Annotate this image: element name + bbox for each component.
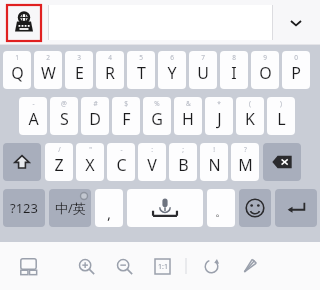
button[interactable]: Shift (3, 143, 41, 181)
staticText: % (154, 99, 160, 108)
staticText: X (85, 154, 95, 176)
button[interactable]: 7 (189, 51, 217, 89)
button[interactable]: ; (169, 143, 197, 181)
button[interactable]: 9 (251, 51, 279, 89)
staticText: E (75, 62, 84, 84)
button[interactable]: ! (200, 143, 228, 181)
staticText: ( (249, 99, 251, 108)
staticText: ? (244, 145, 247, 154)
staticText: ! (213, 145, 215, 154)
button[interactable]: 6 (158, 51, 186, 89)
staticText: & (186, 99, 191, 108)
staticText: / (58, 145, 61, 154)
staticText: 1:1 (158, 262, 168, 272)
button[interactable]: 中/英 (49, 189, 91, 227)
button[interactable]: Switch input method (6, 4, 42, 42)
staticText: N (208, 154, 221, 176)
button[interactable]: 4 (96, 51, 124, 89)
staticText: M (238, 154, 253, 176)
staticText: # (93, 99, 98, 108)
button[interactable]: ) (267, 97, 295, 135)
staticText: 7 (201, 53, 205, 62)
staticText: U (197, 62, 209, 84)
staticText: 0 (294, 53, 298, 62)
staticText: " (89, 145, 92, 154)
staticText: , (107, 203, 112, 223)
staticText: 8 (232, 53, 236, 62)
button[interactable]: Space (127, 189, 203, 227)
button[interactable]: - (107, 143, 135, 181)
staticText: - (32, 99, 35, 108)
button[interactable]: 1 (3, 51, 31, 89)
button[interactable]: Collapse keyboard (278, 5, 314, 40)
staticText: T (137, 62, 146, 84)
button[interactable]: Backspace (263, 143, 301, 181)
staticText: - (120, 145, 123, 154)
staticText: L (277, 108, 286, 130)
button[interactable]: - (19, 97, 47, 135)
staticText: 3 (77, 53, 81, 62)
staticText: P (291, 62, 301, 84)
staticText: Q (11, 62, 24, 84)
staticText: 1 (15, 53, 19, 62)
button[interactable]: ? (231, 143, 259, 181)
staticText: ?123 (10, 199, 38, 217)
staticText: O (259, 62, 272, 84)
staticText: 2 (46, 53, 50, 62)
staticText: 。 (215, 204, 227, 219)
staticText: 5 (139, 53, 143, 62)
staticText: B (178, 154, 189, 176)
button[interactable]: # (81, 97, 109, 135)
staticText: $ (124, 99, 128, 108)
button[interactable]: 5 (127, 51, 155, 89)
button[interactable]: / (45, 143, 73, 181)
button[interactable]: Layout (12, 250, 44, 282)
button[interactable]: 8 (220, 51, 248, 89)
button[interactable]: 2 (34, 51, 62, 89)
staticText: 4 (108, 53, 112, 62)
staticText: * (217, 99, 221, 108)
staticText: K (245, 108, 255, 130)
button[interactable]: : (138, 143, 166, 181)
staticText: D (89, 108, 101, 130)
button[interactable]: % (143, 97, 171, 135)
button[interactable]: @ (50, 97, 78, 135)
staticText: ) (280, 99, 282, 108)
staticText: J (217, 108, 222, 130)
button[interactable] (48, 5, 273, 40)
staticText: 6 (170, 53, 174, 62)
button[interactable]: Rotate (195, 250, 227, 282)
button[interactable]: Zoom in (70, 250, 102, 282)
staticText: 中/英 (55, 199, 86, 217)
staticText: R (105, 62, 115, 84)
button[interactable]: & (174, 97, 202, 135)
staticText: G (151, 108, 163, 130)
staticText: Z (54, 154, 64, 176)
staticText: @ (61, 99, 67, 108)
button[interactable]: Emoji (239, 189, 271, 227)
button[interactable]: * (205, 97, 233, 135)
staticText: S (60, 108, 69, 130)
staticText: H (182, 108, 194, 130)
button[interactable]: Zoom out (108, 250, 140, 282)
staticText: : (151, 145, 153, 154)
staticText: I (231, 62, 237, 84)
button[interactable]: ?123 (3, 189, 45, 227)
staticText: W (41, 62, 56, 84)
staticText: Y (167, 62, 177, 84)
staticText: V (147, 154, 157, 176)
staticText: F (122, 108, 131, 130)
staticText: 9 (263, 53, 267, 62)
button[interactable]: Enter (275, 189, 317, 227)
button[interactable]: " (76, 143, 104, 181)
button[interactable]: , (95, 189, 123, 227)
button[interactable]: 0 (282, 51, 310, 89)
button[interactable]: Actual size (146, 250, 178, 282)
button[interactable]: $ (112, 97, 140, 135)
button[interactable]: Edit (233, 250, 265, 282)
button[interactable]: 3 (65, 51, 93, 89)
staticText: C (116, 154, 127, 176)
staticText: A (28, 108, 39, 130)
button[interactable]: 。 (207, 189, 235, 227)
button[interactable]: ( (236, 97, 264, 135)
